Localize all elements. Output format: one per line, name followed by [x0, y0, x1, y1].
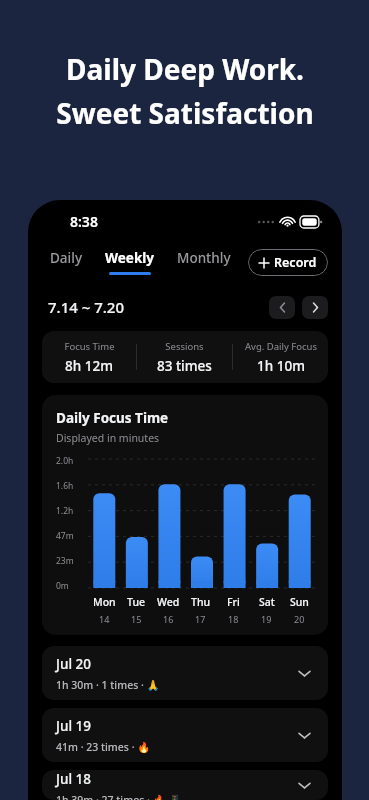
button[interactable]: Record	[248, 249, 328, 276]
staticText: Daily	[50, 249, 83, 267]
staticText: 8:38	[70, 212, 98, 231]
staticText: 47m	[56, 530, 74, 542]
staticText: 19	[261, 613, 272, 625]
staticText: 18	[228, 613, 239, 625]
staticText: Jul 18	[56, 770, 91, 788]
staticText: Tue	[127, 595, 145, 609]
button[interactable]: Daily	[46, 249, 87, 275]
button[interactable]: Focus Time	[42, 331, 328, 383]
staticText: 1h 30m · 1 times · 🙏	[56, 678, 160, 692]
staticText: Displayed in minutes	[56, 431, 160, 445]
staticText: 1.2h	[56, 505, 74, 517]
staticText: 83 times	[157, 357, 212, 375]
staticText: Sweet Satisfaction	[56, 94, 314, 132]
staticText: 16	[163, 613, 174, 625]
staticText: 15	[131, 613, 142, 625]
button[interactable]: Jul 20	[42, 646, 328, 700]
staticText: 20	[294, 613, 305, 625]
staticText: 8h 12m	[65, 357, 113, 375]
staticText: 7.14 ~ 7.20	[48, 297, 125, 317]
staticText: 1.6h	[56, 480, 74, 492]
button[interactable]: Previous week	[269, 296, 295, 319]
staticText: Sat	[259, 595, 275, 609]
button[interactable]: Weekly	[101, 249, 159, 275]
staticText: 14	[99, 613, 110, 625]
staticText: 23m	[56, 555, 74, 567]
staticText: Jul 20	[56, 655, 91, 673]
button[interactable]: Next week	[302, 296, 328, 319]
staticText: 41m · 23 times · 🔥	[56, 740, 151, 754]
staticText: Sessions	[165, 340, 204, 353]
staticText: Wed	[157, 595, 180, 609]
staticText: Sun	[290, 595, 309, 609]
button[interactable]: Expand	[294, 775, 314, 795]
button[interactable]: Jul 19	[42, 708, 328, 762]
staticText: Jul 19	[56, 717, 91, 735]
staticText: 2.0h	[56, 455, 74, 467]
staticText: Focus Time	[64, 340, 115, 353]
staticText: Daily Deep Work.	[66, 50, 304, 88]
staticText: Thu	[191, 595, 211, 609]
staticText: Daily Focus Time	[56, 409, 169, 427]
button[interactable]: Monthly	[173, 249, 235, 275]
staticText: Record	[274, 254, 317, 271]
staticText: Fri	[227, 595, 240, 609]
button[interactable]: Expand	[294, 663, 314, 683]
staticText: Mon	[93, 595, 116, 609]
button[interactable]: Daily Focus Time	[42, 395, 328, 635]
staticText: Weekly	[105, 249, 155, 267]
staticText: Avg. Daily Focus	[245, 340, 317, 353]
button[interactable]: Jul 18	[42, 770, 328, 800]
staticText: 1h 39m · 27 times · 🔥 📱	[56, 793, 182, 800]
staticText: 1h 10m	[257, 357, 305, 375]
staticText: Monthly	[177, 249, 231, 267]
button[interactable]: Expand	[294, 725, 314, 745]
staticText: 17	[195, 613, 206, 625]
staticText: 0m	[56, 580, 69, 592]
